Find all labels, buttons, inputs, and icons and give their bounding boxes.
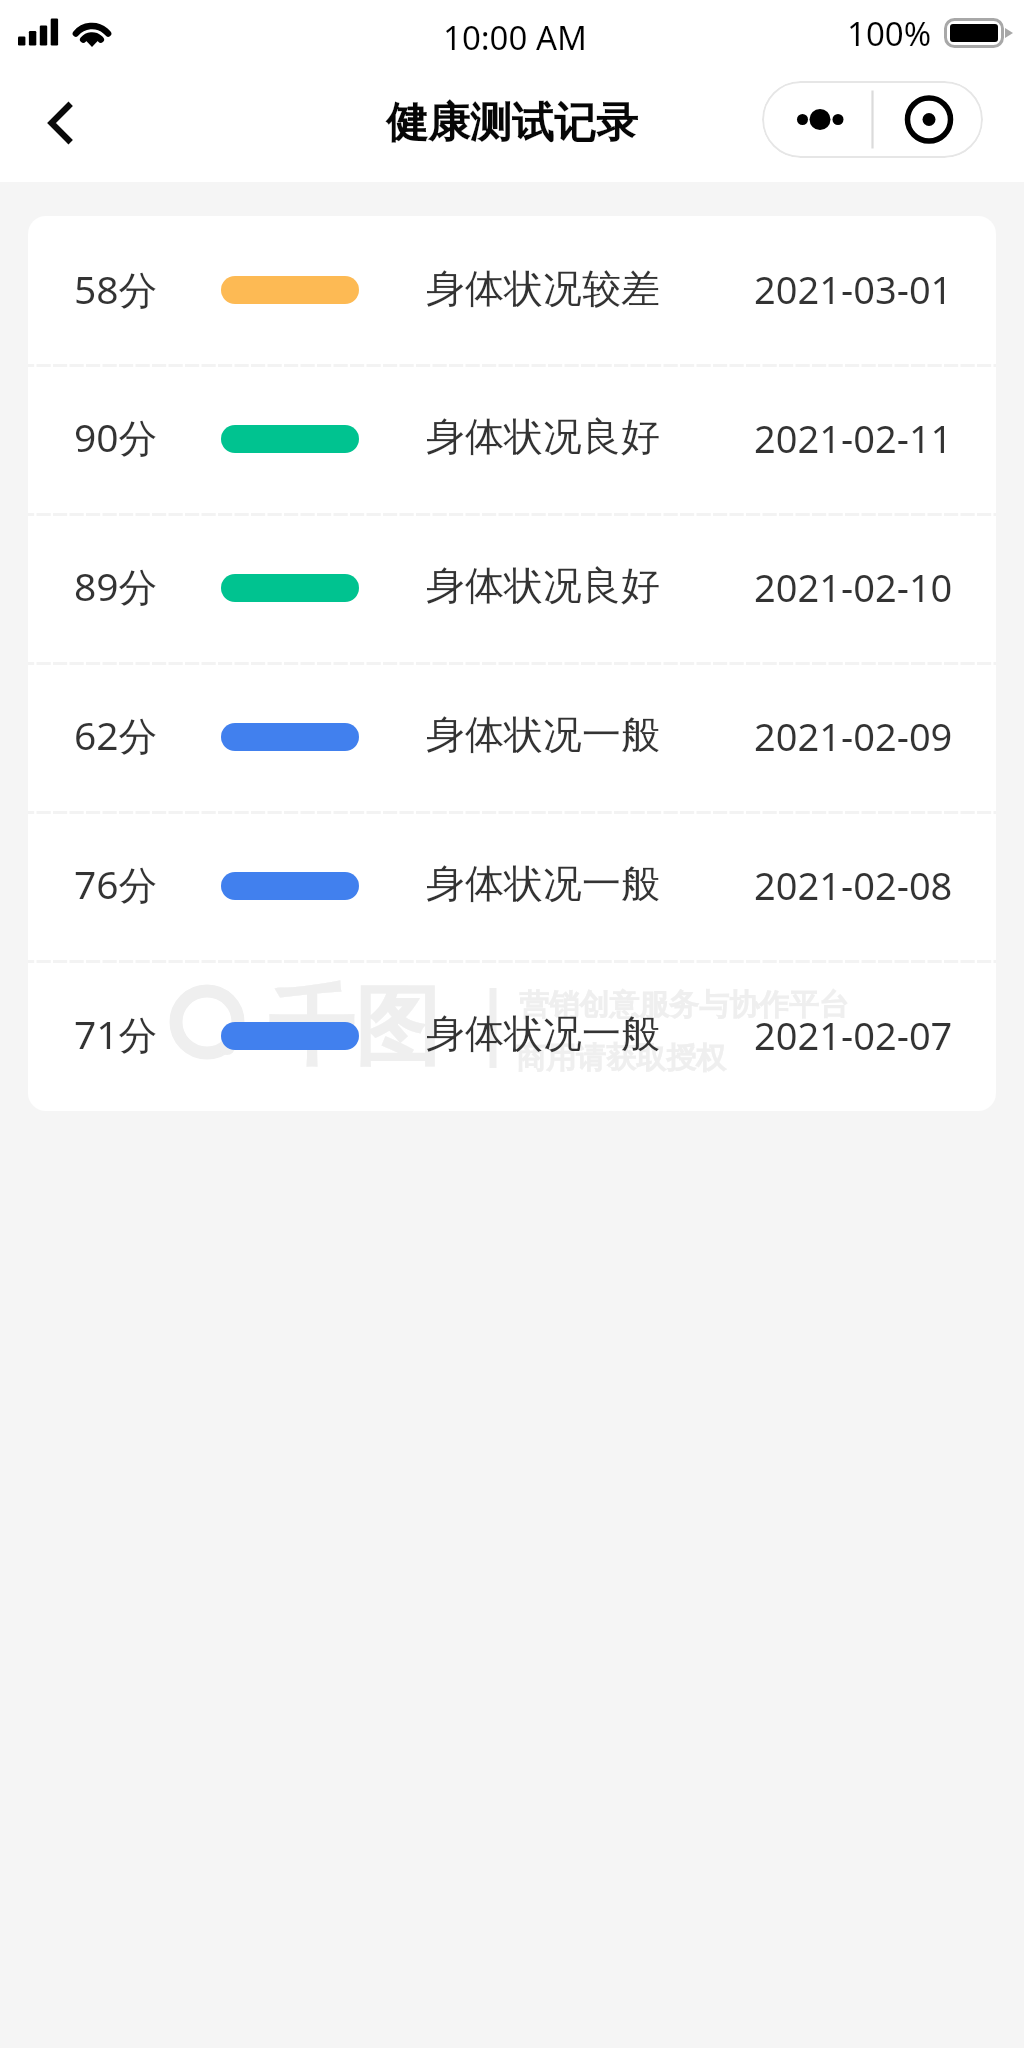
staticText: 10:00 AM [443, 15, 587, 60]
staticText: 2021-02-07 [754, 1009, 953, 1061]
staticText: 身体状况良好 [426, 412, 660, 461]
button[interactable]: 71分 [28, 960, 996, 1111]
button[interactable]: 89分 [28, 513, 996, 662]
button[interactable]: 62分 [28, 662, 996, 811]
staticText: 100% [847, 11, 932, 56]
button[interactable]: Back [10, 78, 106, 182]
staticText: 身体状况一般 [426, 710, 660, 759]
staticText: 2021-02-09 [754, 710, 953, 762]
staticText: 71分 [74, 1007, 158, 1060]
staticText: 身体状况一般 [426, 859, 660, 908]
staticText: 身体状况一般 [426, 1009, 660, 1058]
button[interactable]: 90分 [28, 364, 996, 513]
staticText: 62分 [74, 708, 158, 761]
button[interactable]: 76分 [28, 811, 996, 960]
staticText: 身体状况良好 [426, 561, 660, 610]
staticText: 76分 [74, 857, 158, 910]
staticText: 2021-02-11 [754, 412, 953, 464]
staticText: 2021-02-10 [754, 561, 953, 613]
staticText: 2021-03-01 [754, 263, 953, 315]
staticText: 千图 [268, 973, 440, 1081]
staticText: 身体状况较差 [426, 264, 660, 313]
staticText: 商用请获取授权 [516, 1039, 726, 1077]
staticText: 89分 [74, 559, 158, 612]
staticText: 健康测试记录 [386, 97, 638, 150]
staticText: 2021-02-08 [754, 859, 953, 911]
staticText: 58分 [74, 262, 158, 315]
button[interactable]: Menu [762, 81, 983, 158]
staticText: 营销创意服务与协作平台 [519, 986, 849, 1024]
staticText: 90分 [74, 410, 158, 463]
button[interactable]: 58分 [28, 216, 996, 364]
